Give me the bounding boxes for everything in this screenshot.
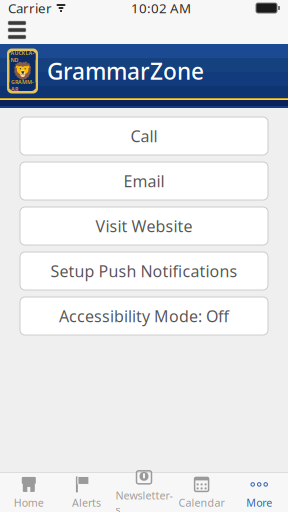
button[interactable]: Menu bbox=[0, 17, 34, 43]
staticText: Calendar bbox=[179, 495, 225, 510]
button[interactable]: Accessibility Mode: Off bbox=[20, 297, 268, 335]
staticText: Alerts bbox=[72, 495, 101, 510]
button[interactable]: Home bbox=[0, 473, 58, 512]
staticText: Visit Website bbox=[95, 215, 192, 237]
staticText: Home bbox=[14, 495, 44, 510]
button[interactable]: Email bbox=[20, 162, 268, 200]
staticText: Setup Push Notifications bbox=[50, 260, 237, 282]
staticText: Email bbox=[123, 170, 164, 192]
staticText: 🦁 bbox=[11, 61, 33, 81]
staticText: GRAMMAR bbox=[11, 78, 34, 93]
staticText: Carrier bbox=[8, 0, 52, 17]
button[interactable]: Setup Push Notifications bbox=[20, 252, 268, 290]
staticText: Accessibility Mode: Off bbox=[59, 305, 229, 327]
staticText: AUCKLAND bbox=[10, 49, 34, 64]
button[interactable]: Call bbox=[20, 117, 268, 155]
button[interactable]: Newsletters bbox=[115, 473, 173, 512]
button[interactable]: Calendar bbox=[173, 473, 230, 512]
staticText: GrammarZone bbox=[47, 56, 204, 86]
staticText: 10:02 AM bbox=[131, 0, 191, 17]
button[interactable]: Alerts bbox=[58, 473, 115, 512]
button[interactable]: Visit Website bbox=[20, 207, 268, 245]
staticText: More bbox=[246, 495, 272, 510]
staticText: Call bbox=[130, 125, 157, 147]
button[interactable]: More bbox=[230, 473, 288, 512]
staticText: Newsletters bbox=[115, 488, 172, 512]
